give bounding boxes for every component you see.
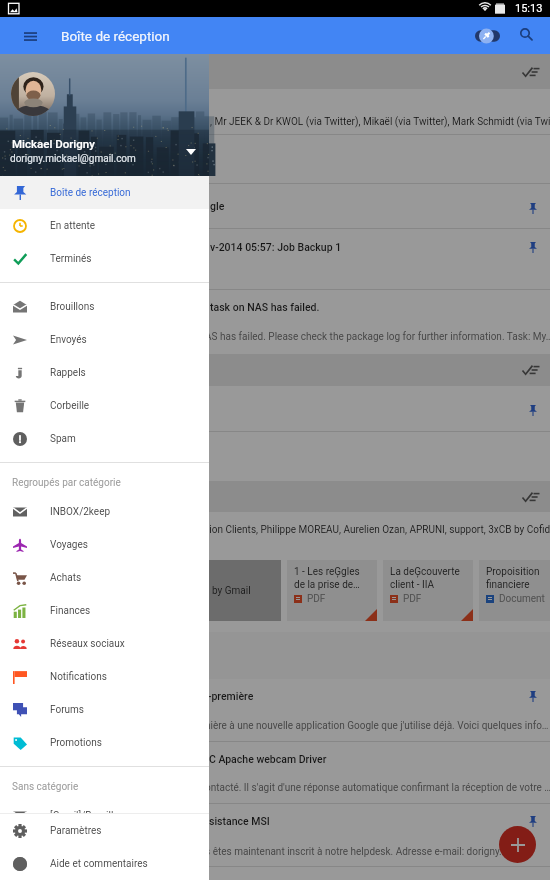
staticText: Aide et commentaires [50,858,148,870]
staticText: Boîte de réception [50,187,131,199]
button[interactable]: Mark all done [518,357,544,383]
button[interactable]: Open navigation drawer [11,17,49,54]
button[interactable]: Vidéo by Gmail (1:43) [191,560,281,621]
button[interactable]: Paramètres [0,814,209,847]
button[interactable]: Terminés [0,242,209,275]
staticText: 1 - Les reĢgles de la prise de… [294,566,373,590]
staticText: Forums [50,704,84,716]
staticText: Brouillons [50,301,95,313]
staticText: task on NAS has failed. [210,301,320,313]
staticText: La deĢcouverte client - IIA [390,566,469,590]
staticText: [Gmail]/Brouillons [50,810,130,822]
button[interactable]: , Mr JEEK & Dr KWOL (via Twitter), Mikaë… [0,89,550,134]
button[interactable]: La deĢcouverte client - IIA [383,560,473,621]
staticText: AS has failed. Please check the package … [205,331,550,343]
button[interactable]: Pin toggle [468,17,508,54]
staticText: 15:13 [515,2,543,15]
button[interactable]: Rappels [0,356,209,389]
staticText: v-2014 05:57: Job Backup 1 [210,241,342,253]
button[interactable]: Mark all done [518,59,544,85]
staticText: -première [208,690,254,702]
button[interactable]: Finances [0,594,209,627]
staticText: sistance MSI [209,815,270,827]
staticText: Notifications [50,671,107,683]
button[interactable]: Pin toggle [468,17,508,54]
staticText: Vidéo by Gmail (1:43) [184,585,274,597]
staticText: Corbeille [50,400,90,412]
staticText: Document [499,593,545,605]
button[interactable]: C Apache webcam Driver [0,742,550,803]
button[interactable]: 1 - Les reĢgles de la prise de… [287,560,377,621]
staticText: Regroupés par catégorie [12,477,121,489]
staticText: Réseaux sociaux [50,638,125,650]
button[interactable]: Corbeille [0,389,209,422]
button[interactable]: Compose [499,826,536,863]
staticText: nière à une nouvelle application Google … [205,720,549,732]
button[interactable] [0,386,550,431]
button[interactable]: Promotions [0,726,209,759]
button[interactable]: INBOX/2keep [0,495,209,528]
staticText: Terminés [50,253,92,265]
staticText: C Apache webcam Driver [209,753,327,765]
button[interactable]: gle [0,184,550,228]
staticText: s êtes maintenant inscrit à notre helpde… [205,846,525,858]
button[interactable]: Envoyés [0,323,209,356]
button[interactable]: Open navigation drawer [11,17,49,54]
staticText: Spam [50,433,76,445]
staticText: Boîte de réception [61,28,170,44]
button[interactable]: Expand accounts [181,142,201,162]
button[interactable]: Propoisition financiere [479,560,550,621]
button[interactable]: [Gmail]/Brouillons [0,799,209,832]
button[interactable]: Achats [0,561,209,594]
staticText: Mickael Dorigny [12,137,95,150]
staticText: INBOX/2keep [50,506,111,518]
button[interactable]: task on NAS has failed. [0,290,550,354]
staticText: Paramètres [50,825,102,837]
button[interactable]: En attente [0,209,209,242]
button[interactable]: Mark all done [518,484,544,510]
staticText: Envoyés [50,334,87,346]
staticText: PDF [403,593,422,605]
button[interactable]: Réseaux sociaux [0,627,209,660]
button[interactable]: Voyages [0,528,209,561]
staticText: , Mr JEEK & Dr KWOL (via Twitter), Mikaë… [210,116,550,128]
staticText: Promotions [50,737,102,749]
staticText: Achats [50,572,82,584]
staticText: dorigny.mickael@gmail.com [10,153,136,165]
staticText: tion Clients, Philippe MOREAU, Aurelien … [206,524,550,536]
staticText: Finances [50,605,91,617]
button[interactable]: Spam [0,422,209,455]
button[interactable]: Brouillons [0,290,209,323]
button[interactable]: -première [0,679,550,741]
button[interactable]: Forums [0,693,209,726]
staticText: ontacté. Il s'agit d'une réponse automat… [205,782,550,794]
staticText: PDF [307,593,326,605]
staticText: Rappels [50,367,86,379]
staticText: Sans catégorie [12,781,79,793]
staticText: Voyages [50,539,88,551]
staticText: Propoisition financiere [486,566,546,590]
button[interactable]: Search [510,17,544,54]
button[interactable]: v-2014 05:57: Job Backup 1 [0,229,550,289]
button[interactable]: Account photo [11,72,55,116]
button[interactable]: Notifications [0,660,209,693]
button[interactable]: sistance MSI [0,804,550,866]
button[interactable]: Boîte de réception [0,176,209,209]
staticText: gle [210,200,225,212]
staticText: En attente [50,220,96,232]
button[interactable]: Search [510,17,544,54]
button[interactable]: Aide et commentaires [0,847,209,880]
button[interactable]: tion Clients, Philippe MOREAU, Aurelien … [0,512,550,548]
staticText: Boîte de réception [61,28,170,44]
